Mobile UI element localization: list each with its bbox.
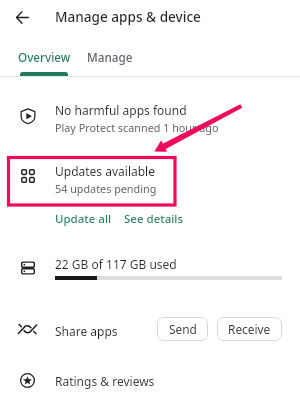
button[interactable]: Updates available — [0, 158, 300, 200]
staticText: Updates available — [55, 163, 155, 179]
button[interactable]: Send — [157, 317, 208, 341]
button[interactable]: Update all — [55, 211, 112, 227]
staticText: Manage apps & device — [55, 7, 201, 26]
button[interactable]: 22 GB of 117 GB used — [0, 250, 300, 288]
staticText: Play Protect scanned 1 hour ago — [55, 120, 219, 135]
staticText: Update all — [55, 211, 112, 227]
staticText: Send — [169, 321, 197, 337]
staticText: No harmful apps found — [55, 102, 187, 118]
button[interactable]: Receive — [217, 317, 282, 341]
button[interactable]: See details — [124, 211, 184, 227]
button[interactable]: Manage — [80, 44, 140, 77]
button[interactable]: Back — [10, 5, 34, 29]
staticText: Manage — [87, 49, 133, 65]
staticText: Receive — [228, 321, 271, 337]
staticText: 22 GB of 117 GB used — [55, 256, 177, 272]
button[interactable]: No harmful apps found — [0, 96, 300, 138]
staticText: Overview — [18, 49, 71, 65]
staticText: Share apps — [55, 323, 118, 339]
staticText: Ratings & reviews — [55, 373, 155, 389]
staticText: See details — [124, 211, 184, 227]
staticText: 54 updates pending — [55, 181, 157, 196]
button[interactable]: Ratings & reviews — [0, 370, 300, 400]
button[interactable]: Overview — [8, 44, 80, 77]
